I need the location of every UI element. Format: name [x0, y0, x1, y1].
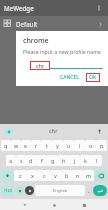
button[interactable]: Recents [79, 200, 89, 210]
button[interactable]: More options [94, 3, 104, 13]
staticText: p [100, 142, 104, 149]
staticText: l [96, 157, 98, 164]
button[interactable]: Period [86, 185, 92, 196]
button[interactable]: p [96, 140, 107, 151]
button[interactable]: k [80, 155, 91, 166]
button[interactable]: English [35, 185, 85, 196]
staticText: z [19, 172, 22, 179]
button[interactable]: t [41, 140, 52, 151]
staticText: i [79, 142, 81, 149]
staticText: b [65, 172, 69, 179]
staticText: m [86, 172, 92, 179]
staticText: MeWedge [4, 4, 34, 12]
button[interactable]: y [52, 140, 63, 151]
button[interactable]: b [61, 170, 72, 181]
button[interactable]: v [50, 170, 61, 181]
staticText: d [29, 157, 33, 164]
staticText: g [51, 157, 55, 164]
staticText: Please input a new profile name [23, 48, 101, 55]
staticText: q [4, 142, 8, 149]
staticText: English [53, 188, 68, 194]
button[interactable]: j [69, 155, 80, 166]
staticText: n [76, 172, 80, 179]
staticText: CANCEL [60, 74, 79, 81]
button[interactable]: h [58, 155, 69, 166]
button[interactable]: q [1, 140, 11, 151]
staticText: k [84, 157, 87, 164]
button[interactable]: Home [49, 200, 59, 210]
button[interactable]: n [72, 170, 83, 181]
button[interactable]: Enter [93, 185, 107, 196]
button[interactable]: e [21, 140, 31, 151]
button[interactable]: ?123 [1, 185, 14, 196]
staticText: chrome [23, 36, 49, 46]
button[interactable]: Default [0, 16, 108, 32]
button[interactable]: Modifier key [94, 170, 107, 181]
staticText: a [9, 157, 13, 164]
button[interactable]: Microphone [95, 127, 104, 136]
button[interactable]: r [31, 140, 41, 151]
staticText: c [43, 172, 46, 179]
button[interactable]: Back [20, 200, 30, 210]
button[interactable]: o [85, 140, 96, 151]
staticText: h [62, 157, 66, 164]
button[interactable]: s [16, 155, 26, 166]
button[interactable]: w [11, 140, 21, 151]
staticText: chr [36, 62, 45, 69]
button[interactable]: OK [86, 73, 100, 82]
staticText: chr [49, 127, 58, 135]
button[interactable]: CANCEL [57, 72, 82, 83]
staticText: f [41, 157, 43, 164]
staticText: j [74, 157, 76, 164]
button[interactable]: z [14, 170, 26, 181]
button[interactable]: i [74, 140, 85, 151]
staticText: x [31, 172, 34, 179]
button[interactable]: g [47, 155, 58, 166]
staticText: . [88, 187, 90, 194]
button[interactable]: m [83, 170, 94, 181]
button[interactable]: a [6, 155, 16, 166]
staticText: s [20, 157, 23, 164]
button[interactable]: Key [25, 186, 34, 195]
staticText: o [89, 142, 93, 149]
staticText: t [46, 142, 48, 149]
button[interactable]: f [36, 155, 47, 166]
staticText: r [35, 142, 38, 149]
staticText: Default [16, 20, 38, 28]
button[interactable]: l [91, 155, 102, 166]
staticText: ?123 [4, 188, 12, 193]
staticText: w [14, 142, 19, 149]
button[interactable]: u [63, 140, 74, 151]
button[interactable]: x [26, 170, 38, 181]
staticText: u [67, 142, 71, 149]
button[interactable]: Voice [4, 127, 13, 136]
staticText: y [56, 142, 59, 149]
button[interactable]: c [38, 170, 50, 181]
button[interactable]: Modifier key [1, 170, 14, 181]
button[interactable]: Key [15, 186, 24, 195]
staticText: v [54, 172, 57, 179]
staticText: OK [89, 74, 97, 81]
staticText: e [24, 142, 28, 149]
button[interactable]: d [26, 155, 36, 166]
